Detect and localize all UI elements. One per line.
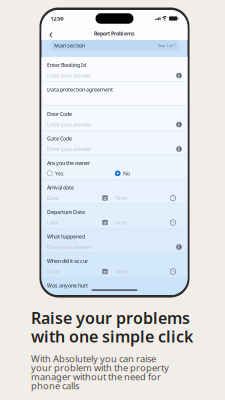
staticText: i (178, 243, 180, 251)
staticText: Report Problems (94, 30, 135, 37)
staticText: What happened (47, 233, 85, 240)
staticText: i (178, 72, 180, 79)
staticText: Door Code (47, 110, 72, 118)
staticText: your problem with the property (31, 361, 169, 374)
staticText: with one simple click (31, 326, 193, 347)
staticText: No (123, 170, 130, 177)
staticText: Enter your answer (47, 145, 91, 153)
staticText: Data protection agreement (47, 86, 113, 93)
staticText: i (178, 121, 180, 128)
staticText: Enter your answer (47, 121, 91, 128)
staticText: Main Section (54, 42, 85, 49)
button[interactable]: Yes (47, 170, 108, 177)
staticText: Enter your answer (47, 243, 91, 251)
button[interactable]: No (115, 170, 176, 177)
staticText: Time (115, 194, 127, 202)
staticText: ‹ (49, 25, 53, 41)
staticText: Gate Code (47, 135, 72, 142)
staticText: Time (115, 219, 127, 226)
staticText: i (178, 145, 180, 153)
staticText: phone calls (31, 379, 79, 392)
staticText: Raise your problems (31, 307, 190, 328)
staticText: Step 1 of 1 (158, 43, 175, 48)
staticText: manager without the need for (31, 370, 161, 383)
button[interactable]: Back (46, 28, 55, 38)
staticText: Yes (55, 170, 64, 177)
staticText: With Absolutely you can raise (31, 352, 156, 365)
staticText: Enter your answer (47, 72, 91, 79)
staticText: Date (47, 219, 59, 226)
staticText: Arrival date (47, 184, 74, 191)
staticText: Was anyone hurt (47, 282, 88, 289)
staticText: Date (47, 194, 59, 202)
staticText: Are you the owner (47, 159, 90, 167)
staticText: Time (115, 268, 127, 275)
staticText: Date (47, 268, 59, 275)
staticText: Departure Date (47, 208, 85, 216)
staticText: 12:50 (50, 15, 63, 22)
staticText: Enter Booking Id (47, 61, 86, 69)
staticText: When did it occur (47, 257, 88, 265)
